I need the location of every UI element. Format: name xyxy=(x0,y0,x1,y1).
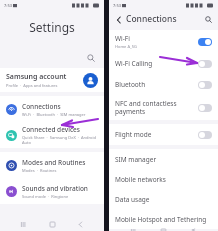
button[interactable]: Back xyxy=(188,229,199,231)
button[interactable]: Search xyxy=(203,14,213,24)
staticText: NFC and contactless payments xyxy=(115,99,177,116)
staticText: Sounds and vibration xyxy=(22,184,88,193)
button[interactable]: On xyxy=(198,38,212,46)
staticText: Settings xyxy=(29,19,75,35)
staticText: Flight mode xyxy=(115,130,152,139)
button[interactable]: Connected devices xyxy=(0,122,104,148)
button[interactable]: Mobile networks xyxy=(109,169,218,189)
staticText: Connections xyxy=(126,13,177,25)
staticText: SIM manager xyxy=(115,155,157,164)
staticText: Connected devices xyxy=(22,125,81,134)
button[interactable]: Samsung account xyxy=(0,68,104,92)
button[interactable]: Off xyxy=(198,60,212,68)
staticText: Bluetooth xyxy=(115,80,146,89)
button[interactable]: Connections xyxy=(0,96,104,122)
button[interactable]: Off xyxy=(198,131,212,139)
button[interactable]: Recents xyxy=(128,229,139,231)
button[interactable]: Back xyxy=(75,219,86,230)
staticText: 7:53 xyxy=(113,3,121,8)
staticText: Wi-Fi Calling xyxy=(115,59,153,68)
staticText: Mobile Hotspot and Tethering xyxy=(115,215,207,224)
staticText: Profile · Apps and features xyxy=(6,83,58,88)
button[interactable]: SIM manager xyxy=(109,149,218,169)
button[interactable]: Home xyxy=(47,219,58,230)
button[interactable]: Off xyxy=(198,104,212,112)
button[interactable]: Back xyxy=(114,15,123,24)
button[interactable]: Flight mode xyxy=(109,124,218,145)
button[interactable]: Search xyxy=(87,54,97,64)
button[interactable]: Wi-Fi xyxy=(109,30,218,53)
staticText: Home A_5G xyxy=(115,44,137,49)
staticText: 7:53 xyxy=(4,3,12,8)
button[interactable]: Bluetooth xyxy=(109,74,218,95)
staticText: Wi-Fi · Bluetooth · SIM manager xyxy=(22,112,86,117)
button[interactable]: Off xyxy=(198,81,212,89)
staticText: Modes and Routines xyxy=(22,158,86,167)
staticText: Sound mode · Ringtone xyxy=(22,194,69,199)
button[interactable]: Sounds and vibration xyxy=(0,178,104,204)
staticText: Samsung account xyxy=(6,72,67,82)
button[interactable]: Modes and Routines xyxy=(0,152,104,178)
button[interactable]: Mobile Hotspot and Tethering xyxy=(109,209,218,229)
staticText: Mobile networks xyxy=(115,175,166,184)
staticText: Wi-Fi xyxy=(115,34,130,43)
button[interactable]: Wi-Fi Calling xyxy=(109,53,218,74)
button[interactable]: Data usage xyxy=(109,189,218,209)
staticText: Quick Share · Samsung DeX · Android Auto xyxy=(22,135,98,145)
staticText: Data usage xyxy=(115,195,150,204)
staticText: Connections xyxy=(22,102,61,111)
button[interactable]: NFC and contactless payments xyxy=(109,95,218,120)
button[interactable]: Recents xyxy=(18,219,29,230)
staticText: Modes · Routines xyxy=(22,168,57,173)
button[interactable]: Home xyxy=(158,229,169,231)
